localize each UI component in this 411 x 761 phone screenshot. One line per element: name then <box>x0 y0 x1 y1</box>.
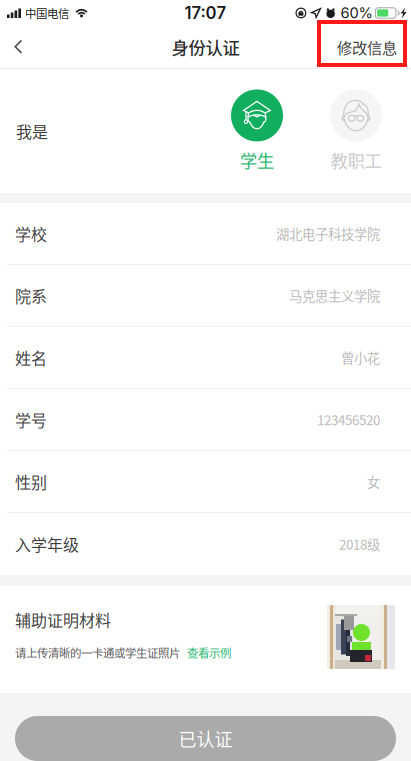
staticText: 曾小花 <box>341 348 380 367</box>
button[interactable]: 教职工 <box>325 89 387 173</box>
staticText: 中国电信 <box>25 5 69 21</box>
staticText: 已认证 <box>178 725 232 752</box>
staticText: 入学年级 <box>15 532 79 556</box>
staticText: 请上传清晰的一卡通或学生证照片 <box>15 644 180 661</box>
staticText: 湖北电子科技学院 <box>276 224 380 243</box>
staticText: 17:07 <box>184 3 226 23</box>
staticText: 学生 <box>240 147 274 173</box>
button[interactable]: 修改信息 <box>323 23 411 71</box>
staticText: 院系 <box>15 284 47 307</box>
button[interactable]: 已认证 <box>15 716 396 761</box>
staticText: 马克思主义学院 <box>289 286 380 305</box>
staticText: 我是 <box>16 119 48 143</box>
staticText: 123456520 <box>317 410 380 429</box>
staticText: 性别 <box>15 470 47 493</box>
button[interactable]: Uploaded certificate photo <box>327 605 395 669</box>
staticText: 2018级 <box>339 534 380 554</box>
staticText: 60% <box>340 4 372 22</box>
staticText: 身份认证 <box>171 34 239 60</box>
staticText: 修改信息 <box>337 36 397 58</box>
staticText: 学校 <box>15 222 47 245</box>
button[interactable]: 学生 <box>226 89 288 173</box>
staticText: 学号 <box>15 408 47 431</box>
staticText: 女 <box>367 472 380 491</box>
staticText: 姓名 <box>15 346 47 369</box>
staticText: 辅助证明材料 <box>15 608 111 631</box>
button[interactable]: 查看示例 <box>180 644 231 661</box>
staticText: 查看示例 <box>187 644 231 661</box>
staticText: 教职工 <box>330 147 381 173</box>
button[interactable]: Back <box>0 26 37 67</box>
